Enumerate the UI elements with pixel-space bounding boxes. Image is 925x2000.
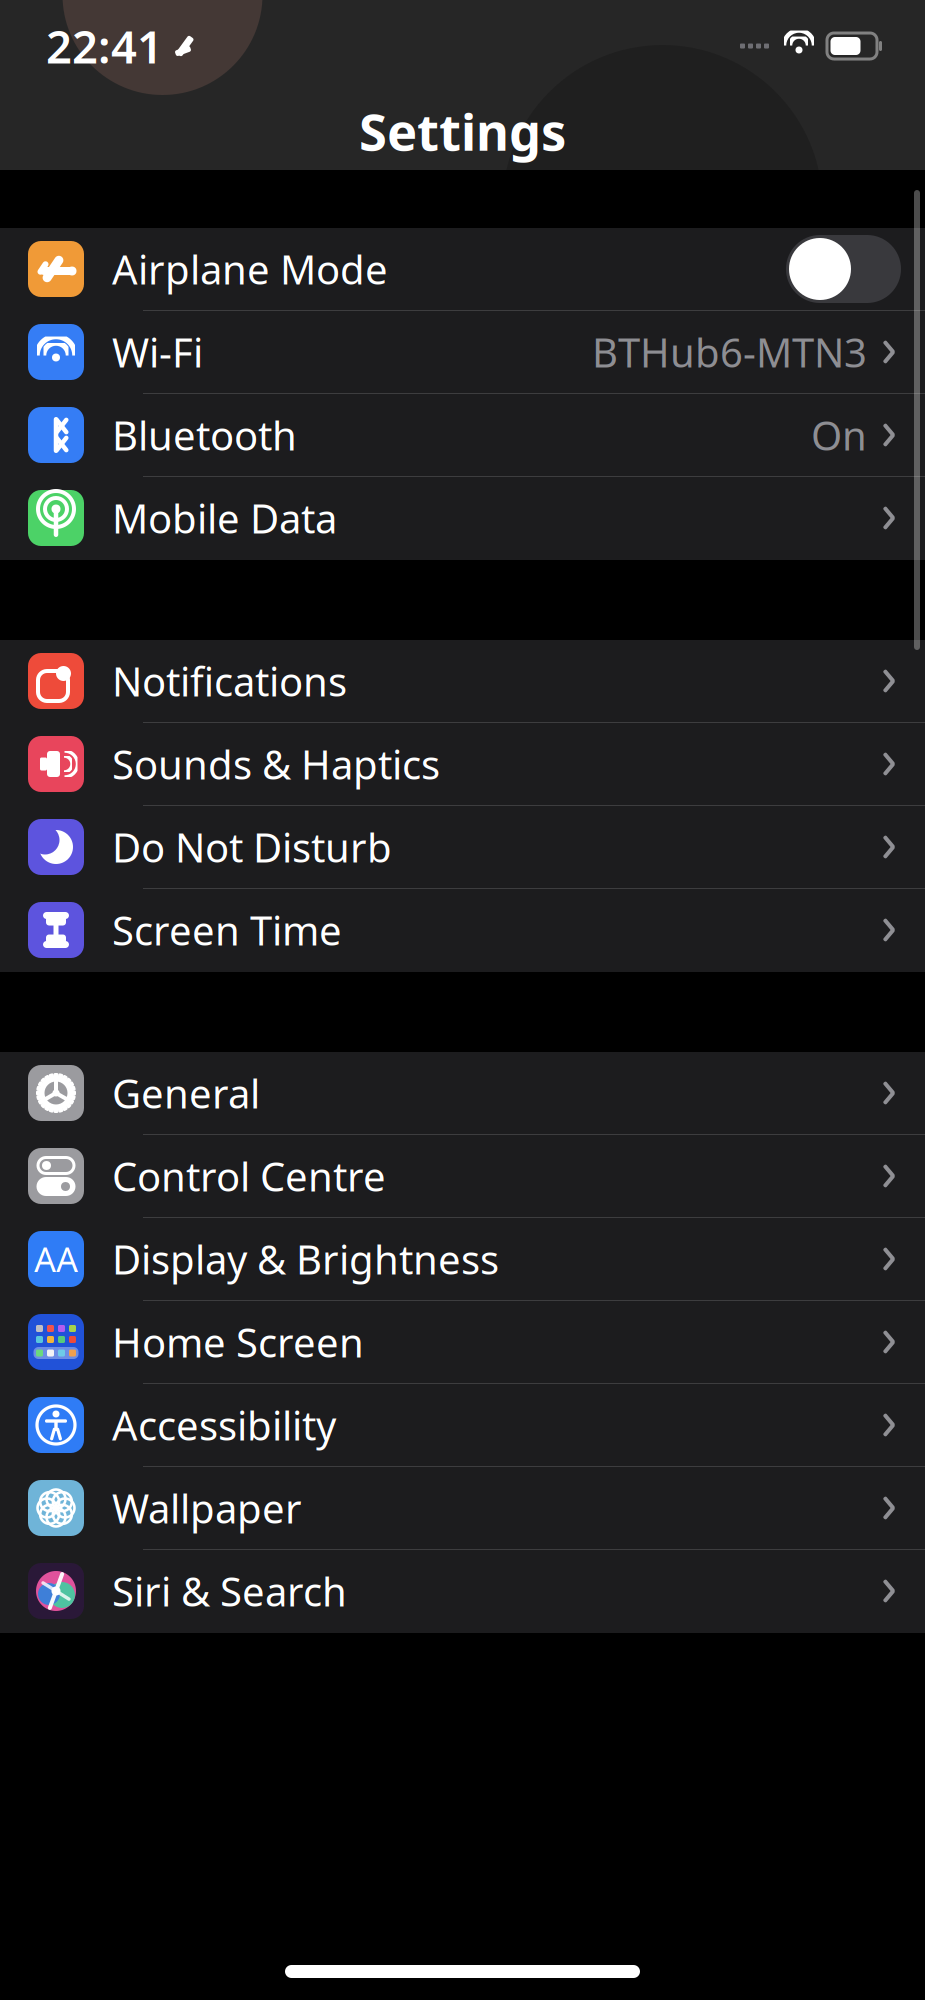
staticText: 22:41 <box>46 16 163 76</box>
button[interactable]: Home Screen <box>0 1301 925 1384</box>
button[interactable]: Notifications <box>0 640 925 723</box>
staticText: Display & Brightness <box>112 1232 499 1285</box>
button[interactable]: General <box>0 1052 925 1135</box>
staticText: Mobile Data <box>112 491 337 544</box>
button[interactable]: AA <box>0 1218 925 1301</box>
button[interactable]: Accessibility <box>0 1384 925 1467</box>
button[interactable]: Wi-Fi <box>0 311 925 394</box>
staticText: Wi-Fi <box>112 325 203 378</box>
button[interactable]: Wallpaper <box>0 1467 925 1550</box>
staticText: Settings <box>359 97 566 165</box>
staticText: General <box>112 1066 260 1119</box>
staticText: Screen Time <box>112 903 342 956</box>
staticText: Home Screen <box>112 1315 364 1368</box>
staticText: Airplane Mode <box>112 242 388 295</box>
staticText: Control Centre <box>112 1149 386 1202</box>
button[interactable]: Screen Time <box>0 889 925 972</box>
staticText: Siri & Search <box>112 1564 347 1617</box>
button[interactable]: Airplane Mode <box>0 228 925 311</box>
staticText: Accessibility <box>112 1398 336 1451</box>
button[interactable]: Mobile Data <box>0 477 925 560</box>
staticText: Sounds & Haptics <box>112 737 440 790</box>
staticText: Bluetooth <box>112 408 297 461</box>
staticText: Notifications <box>112 654 347 707</box>
button[interactable]: Do Not Disturb <box>0 806 925 889</box>
staticText: On <box>811 408 867 461</box>
staticText: Wallpaper <box>112 1481 302 1534</box>
button[interactable]: Sounds & Haptics <box>0 723 925 806</box>
button[interactable]: Siri & Search <box>0 1550 925 1633</box>
staticText: Do Not Disturb <box>112 820 392 873</box>
button[interactable]: Bluetooth <box>0 394 925 477</box>
staticText: BTHub6-MTN3 <box>592 325 867 378</box>
staticText: AA <box>34 1236 78 1282</box>
button[interactable]: Control Centre <box>0 1135 925 1218</box>
